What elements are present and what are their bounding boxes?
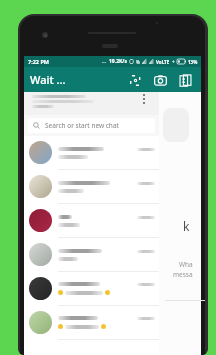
- button[interactable]: [24, 238, 159, 271]
- staticText: VoLTE: [156, 59, 170, 65]
- button[interactable]: [24, 204, 159, 237]
- staticText: k: [183, 218, 190, 234]
- button[interactable]: More options: [139, 94, 149, 110]
- button[interactable]: Camera: [150, 70, 170, 90]
- button[interactable]: Wait ...: [30, 72, 125, 87]
- button[interactable]: [24, 306, 159, 339]
- button[interactable]: Sync: [125, 70, 145, 90]
- button[interactable]: Documents: [175, 70, 195, 90]
- staticText: 19.2K/s: [109, 58, 127, 65]
- staticText: ...: [102, 58, 107, 65]
- button[interactable]: [24, 170, 159, 203]
- staticText: messa: [173, 270, 193, 279]
- staticText: %: [136, 59, 140, 65]
- staticText: 13%: [188, 59, 198, 65]
- button[interactable]: [24, 272, 159, 305]
- button[interactable]: More options: [24, 92, 159, 115]
- staticText: Wha: [179, 260, 193, 269]
- staticText: Search or start new chat: [45, 121, 119, 130]
- button[interactable]: Search or start new chat: [28, 118, 155, 133]
- staticText: 7:22 PM: [28, 58, 50, 65]
- staticText: +: [172, 59, 175, 65]
- button[interactable]: [24, 136, 159, 169]
